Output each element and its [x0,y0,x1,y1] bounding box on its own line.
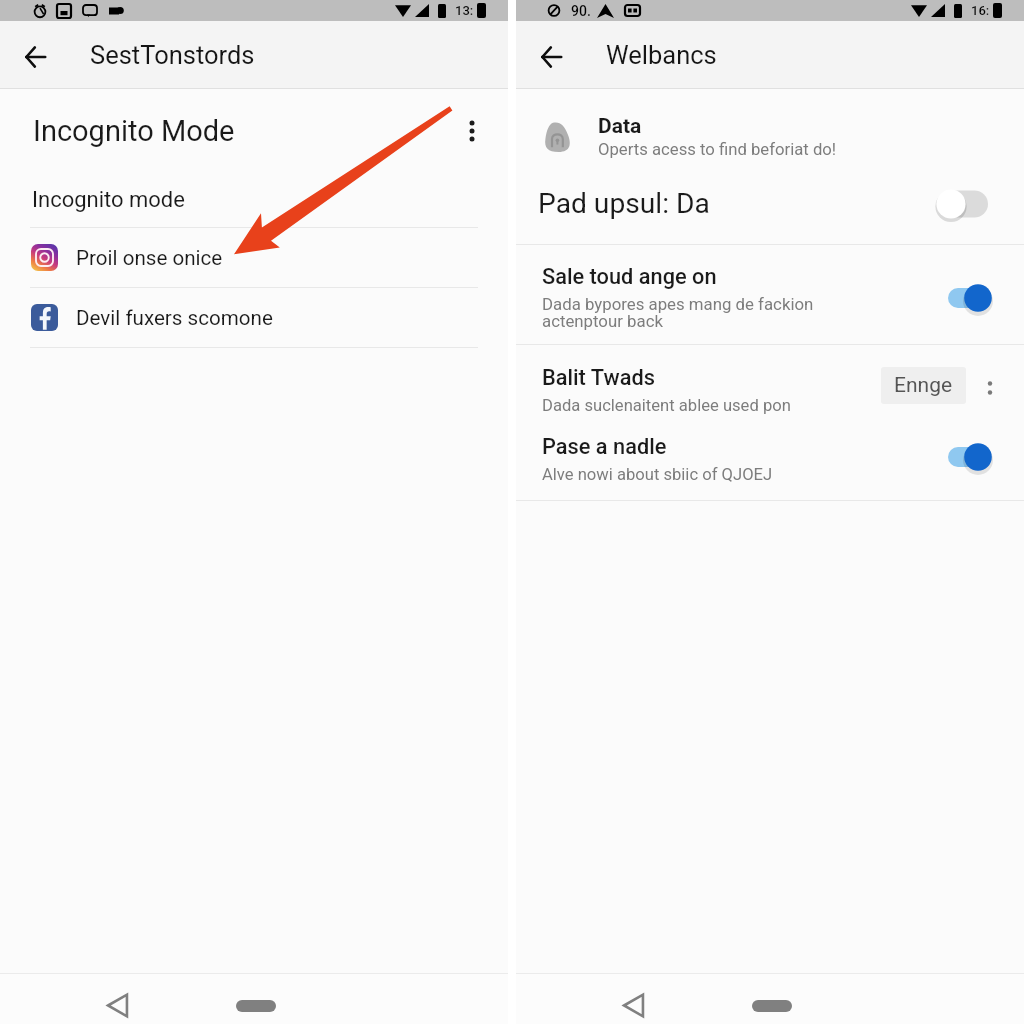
button[interactable]: Data [516,105,1024,167]
staticText: Data [598,114,642,139]
staticText: Proil onse onice [76,246,223,270]
staticText: Devil fuxers scomone [76,306,273,330]
button[interactable]: Sale toud ange on [516,248,1024,347]
staticText: Ennge [894,373,953,398]
staticText: Incognito Mode [33,114,235,148]
staticText: Incognito mode [32,187,185,213]
button[interactable]: Back [97,985,138,1024]
staticText: Pase a nadle [542,434,667,460]
button[interactable]: Devil fuxers scomone [0,288,508,347]
button[interactable]: More options [448,107,496,155]
staticText: Dada bypores apes mang de fackion actenp… [542,294,814,331]
staticText: 16: [971,3,990,18]
button[interactable]: Balit Twads [516,353,1024,421]
staticText: Alve nowi about sbiic of QJOEJ [542,465,773,484]
button[interactable]: Home [228,993,284,1019]
button[interactable]: Pad upsul: Da [516,174,1024,233]
staticText: Welbancs [606,40,717,70]
button[interactable]: Proil onse onice [0,228,508,287]
button[interactable]: Back [613,985,654,1024]
staticText: Sale toud ange on [542,264,717,290]
staticText: 13: [455,3,474,18]
button[interactable]: Toggle on [933,281,991,315]
button[interactable]: Ennge [881,367,966,404]
button[interactable]: Pase a nadle [516,420,1024,493]
button[interactable]: More options [969,364,1011,406]
button[interactable]: Back [523,26,580,83]
staticText: Dada suclenaitent ablee used pon [542,396,791,415]
staticText: Pad upsul: Da [538,187,710,220]
staticText: 90. [571,3,591,19]
button[interactable]: Home [744,993,800,1019]
staticText: Operts acess to find beforiat do! [598,140,837,160]
button[interactable]: Toggle on [933,440,991,474]
button[interactable]: Back [7,26,64,83]
staticText: SestTonstords [90,40,255,70]
button[interactable]: Toggle off [933,187,991,221]
staticText: Balit Twads [542,365,655,391]
